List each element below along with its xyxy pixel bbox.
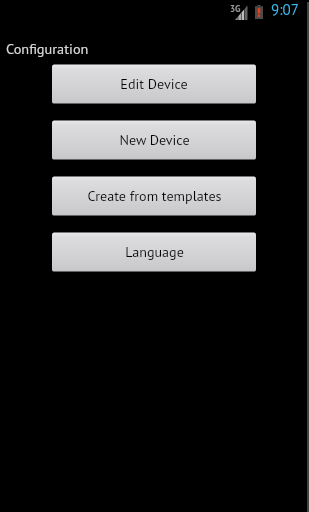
staticText: Configuration	[6, 39, 89, 58]
staticText: 9:07	[271, 0, 299, 19]
staticText: Edit Device	[120, 75, 188, 93]
button[interactable]: New Device	[52, 120, 256, 160]
staticText: New Device	[119, 131, 190, 149]
button[interactable]: Language	[52, 232, 256, 272]
staticText: Language	[125, 243, 184, 261]
staticText: 3G	[230, 3, 241, 15]
staticText: Create from templates	[87, 187, 222, 205]
button[interactable]: Edit Device	[52, 64, 256, 104]
button[interactable]: Create from templates	[52, 176, 256, 216]
